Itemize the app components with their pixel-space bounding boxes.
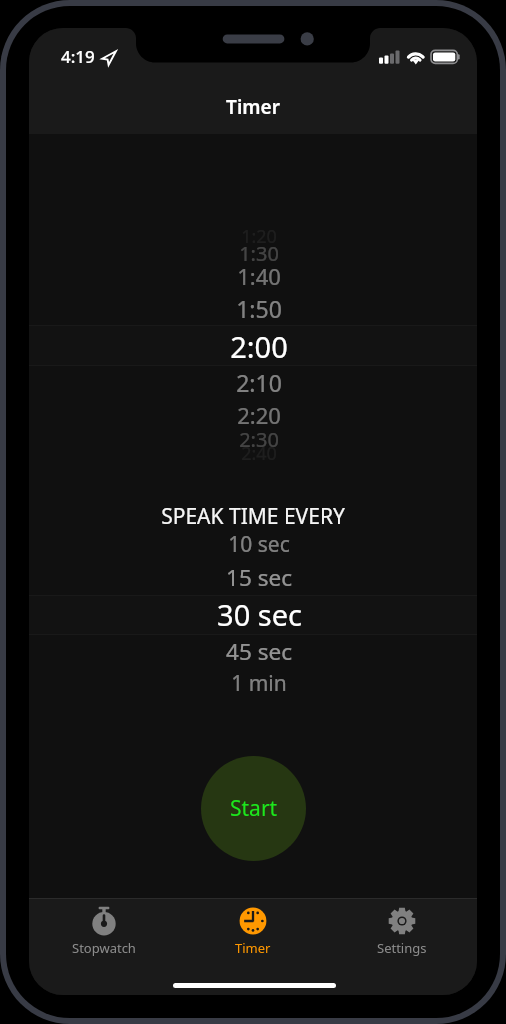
staticText: 30 sec [217, 595, 302, 634]
button[interactable]: Stopwatch tab [34, 899, 174, 969]
staticText: 2:40 [241, 441, 277, 466]
staticText: SPEAK TIME EVERY [161, 502, 345, 531]
staticText: Timer [226, 94, 280, 120]
staticText: 2:20 [237, 400, 281, 430]
staticText: 2:00 [230, 327, 288, 366]
staticText: Stopwatch [72, 939, 136, 957]
staticText: 1 min [231, 669, 287, 698]
staticText: 10 sec [228, 530, 290, 559]
button[interactable]: Start [201, 756, 306, 861]
staticText: 15 sec [226, 562, 292, 593]
staticText: 1:30 [239, 240, 279, 267]
staticText: Settings [377, 939, 427, 957]
button[interactable]: Timer tab [183, 899, 323, 969]
staticText: 1:20 [241, 224, 277, 249]
staticText: 45 sec [226, 636, 292, 667]
staticText: 4:19 [61, 45, 95, 68]
staticText: 1:50 [236, 293, 282, 324]
staticText: 2:30 [239, 426, 279, 453]
staticText: Timer [235, 939, 271, 957]
staticText: Start [230, 794, 278, 823]
staticText: 2:10 [236, 367, 282, 398]
button[interactable]: Settings tab [332, 899, 472, 969]
staticText: 1:40 [237, 261, 281, 291]
